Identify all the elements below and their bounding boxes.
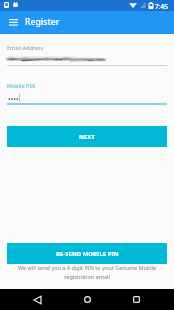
staticText: 7:45	[155, 2, 168, 11]
button[interactable]: Open navigation menu	[2, 11, 22, 34]
staticText: Mobile PIN	[7, 82, 36, 89]
button[interactable]: Back	[22, 289, 53, 310]
button[interactable]: Recent apps	[120, 289, 152, 310]
button[interactable]: NEXT	[7, 126, 167, 147]
button[interactable]: RE-SEND MOBILE PIN	[7, 243, 167, 264]
staticText: RE-SEND MOBILE PIN	[56, 250, 119, 258]
staticText: We will send you a 4 digit PIN to your G…	[11, 264, 163, 280]
button[interactable]: Home	[71, 289, 103, 310]
staticText: NEXT	[79, 133, 95, 141]
staticText: Email Address	[7, 44, 44, 51]
staticText: Register	[25, 16, 60, 28]
